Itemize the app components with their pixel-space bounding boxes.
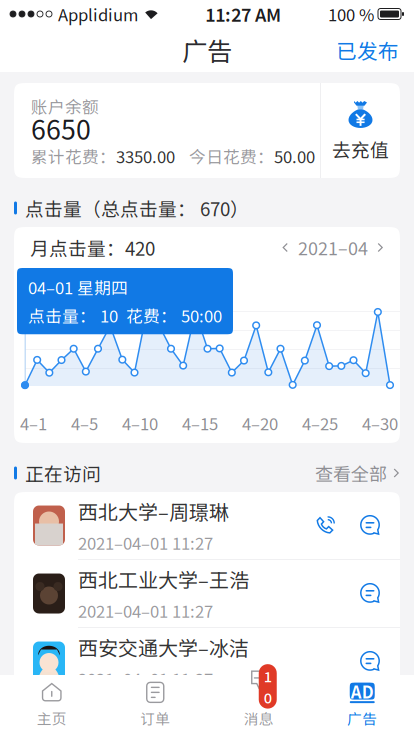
staticText: 订单 xyxy=(140,707,170,729)
staticText: 点击量： 10 花费： 50:00 xyxy=(28,303,222,327)
staticText: 6650 xyxy=(31,109,91,147)
staticText: 2021–04–01 11:27 xyxy=(78,530,213,554)
staticText: 4–30 xyxy=(362,411,398,435)
staticText: 100 % xyxy=(328,2,374,26)
staticText: 账户余额 xyxy=(31,94,99,118)
button[interactable]: 西北工业大学–王浩 xyxy=(14,560,400,627)
staticText: 广告 xyxy=(182,32,232,68)
staticText: 4–15 xyxy=(182,411,218,435)
staticText: 4–5 xyxy=(71,411,98,435)
button[interactable]: 订单 xyxy=(103,675,207,736)
button[interactable]: 去充值 xyxy=(321,83,400,178)
staticText: 今日花费： xyxy=(189,144,274,168)
staticText: 04–01 星期四 xyxy=(28,275,128,299)
button[interactable]: 西安交通大学–冰洁 xyxy=(14,628,400,695)
button[interactable]: 西北大学–周璟琳 xyxy=(14,492,400,559)
staticText: 11:27 AM xyxy=(205,1,281,27)
staticText: 西安交通大学–冰洁 xyxy=(78,632,249,661)
staticText: 点击量（总点击量： 670） xyxy=(25,194,249,221)
staticText: 4–25 xyxy=(302,411,338,435)
staticText: 2021–04–01 11:27 xyxy=(78,598,213,622)
staticText: 西北工业大学–王浩 xyxy=(78,564,249,593)
staticText: 月点击量： xyxy=(30,234,125,261)
staticText: 消息 xyxy=(244,707,274,729)
staticText: 正在访问 xyxy=(25,459,101,486)
button[interactable]: 查看全部 xyxy=(315,460,400,486)
staticText: 去充值 xyxy=(332,135,389,162)
staticText: 2021–04 xyxy=(298,234,368,261)
button[interactable]: 已发布 xyxy=(321,25,414,75)
button[interactable]: 2021–04 xyxy=(282,234,384,261)
staticText: 4–1 xyxy=(20,411,47,435)
staticText: 查看全部 xyxy=(315,460,387,486)
button[interactable]: AD xyxy=(310,675,414,736)
staticText: 广告 xyxy=(347,707,377,729)
staticText: 西北大学–周璟琳 xyxy=(78,496,229,525)
staticText: 4–10 xyxy=(122,411,158,435)
button[interactable]: 主页 xyxy=(0,675,103,736)
staticText: 2021–04–01 11:27 xyxy=(78,666,213,690)
staticText: AD xyxy=(351,679,374,703)
staticText: 420 xyxy=(125,234,155,261)
staticText: 50.00 xyxy=(274,144,315,168)
staticText: 已发布 xyxy=(336,35,399,65)
staticText: 3350.00 xyxy=(116,144,175,168)
staticText: 累计花费： xyxy=(31,144,116,168)
staticText: 4–20 xyxy=(242,411,278,435)
button[interactable]: 10 xyxy=(207,675,310,736)
staticText: Applidium xyxy=(58,2,138,26)
staticText: 10 xyxy=(264,665,272,708)
staticText: 主页 xyxy=(37,707,67,729)
